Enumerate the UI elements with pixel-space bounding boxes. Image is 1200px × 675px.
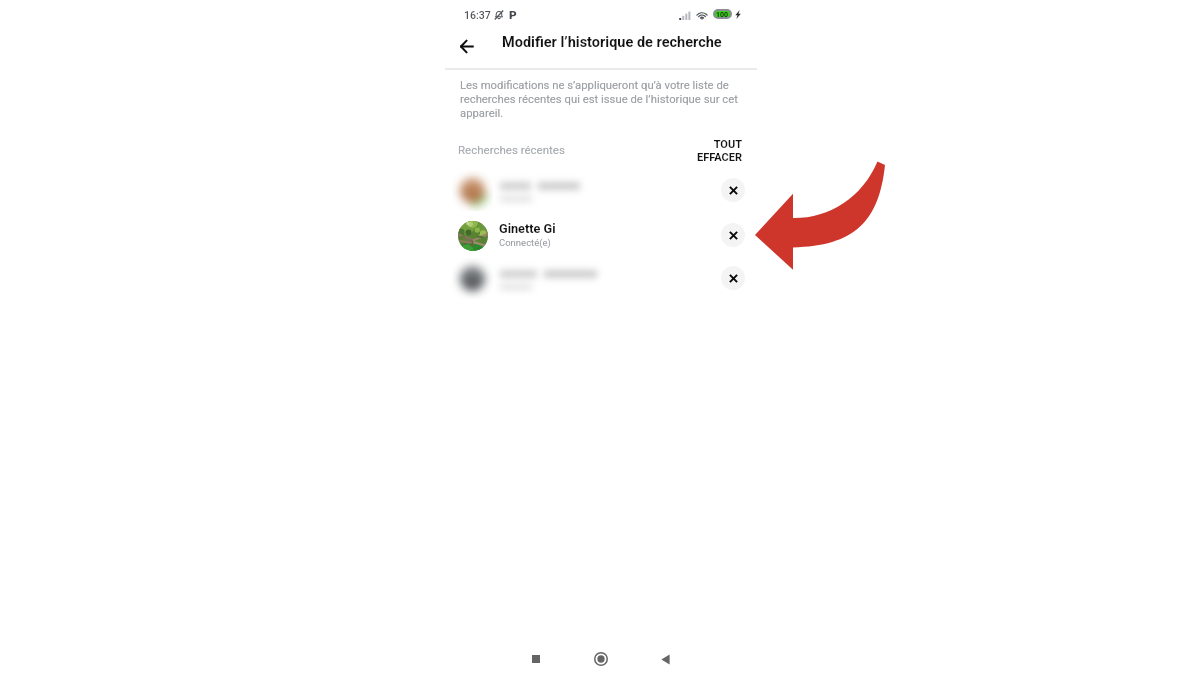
button[interactable]: Back <box>653 647 677 671</box>
button[interactable]: Remove from history <box>445 168 757 212</box>
button[interactable]: Back <box>453 32 481 60</box>
button[interactable]: Remove from history <box>445 256 757 300</box>
button[interactable]: Remove from history <box>721 266 745 290</box>
button[interactable]: Remove from history <box>721 178 745 202</box>
staticText: Les modifications ne s’appliqueront qu’à… <box>460 79 748 120</box>
staticText: TOUT EFFACER <box>697 138 742 164</box>
staticText: 100 <box>716 11 729 17</box>
button[interactable]: Ginette Gi <box>445 213 757 257</box>
staticText: Modifier l’historique de recherche <box>502 34 722 51</box>
staticText: Connecté(e) <box>499 237 551 248</box>
staticText: Recherches récentes <box>458 143 565 156</box>
staticText: 16:37 <box>464 9 491 21</box>
button[interactable]: Home <box>589 647 613 671</box>
button[interactable]: TOUT EFFACER <box>685 138 742 164</box>
staticText: P <box>509 8 517 22</box>
button[interactable]: Recent apps <box>524 647 548 671</box>
button[interactable]: Remove from history <box>721 223 745 247</box>
staticText: Ginette Gi <box>499 221 556 236</box>
